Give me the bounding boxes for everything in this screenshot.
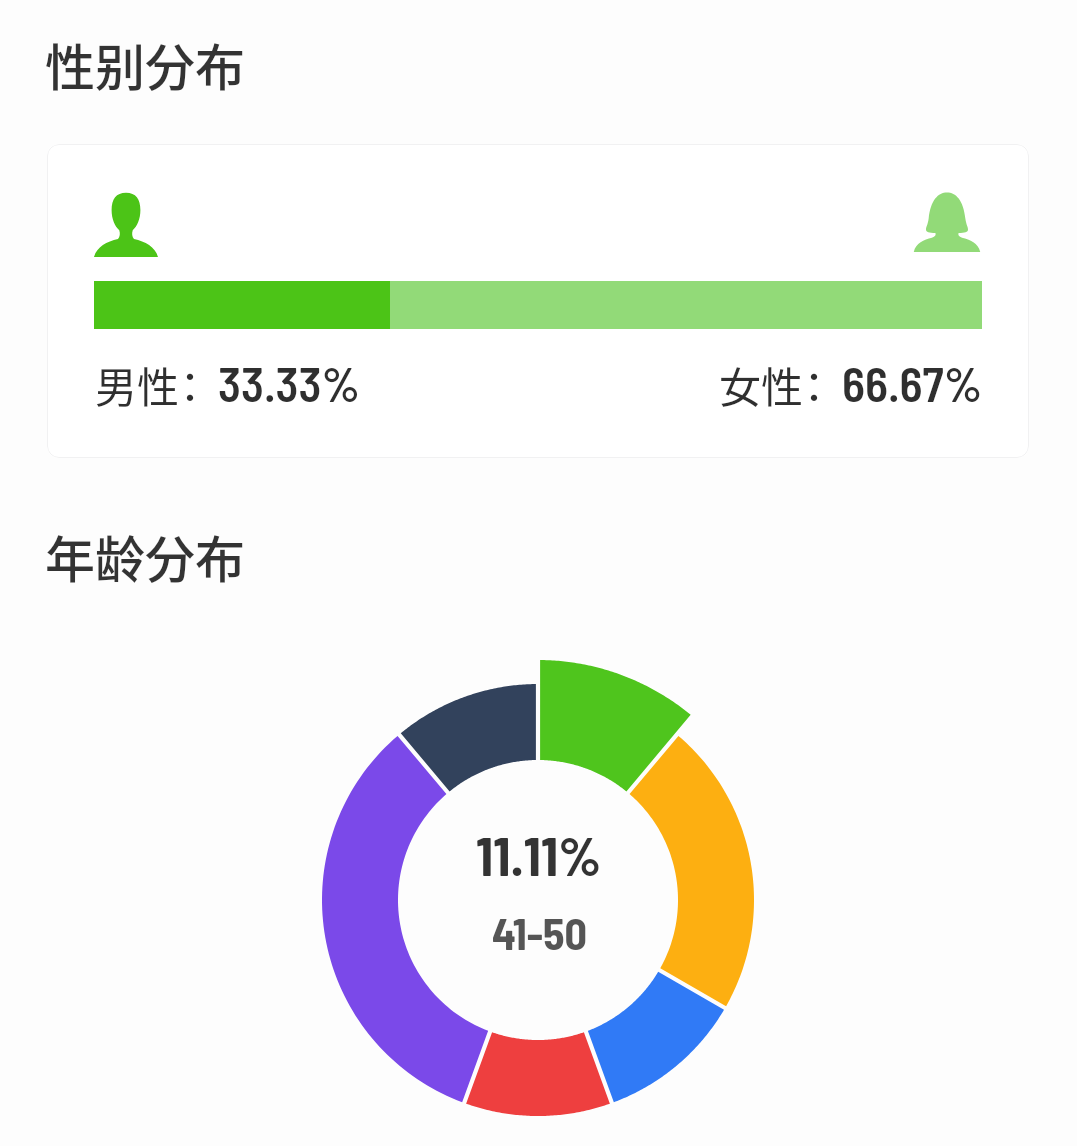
button[interactable]: 男性 (95, 354, 365, 415)
other: Male (94, 189, 158, 257)
staticText: 11.11% (476, 822, 602, 887)
staticText: 41-50 (492, 906, 587, 959)
staticText: 女性 (719, 354, 804, 415)
staticText: 性别分布 (45, 28, 245, 100)
staticText: 年龄分布 (45, 520, 245, 592)
button[interactable]: 女性 (714, 354, 983, 415)
staticText: 男性 (95, 354, 180, 415)
button[interactable]: Age distribution chart (298, 660, 778, 1140)
staticText: 33.33% (218, 354, 360, 412)
button[interactable]: Male (47, 144, 1029, 458)
staticText: 66.67% (842, 354, 983, 412)
staticText: ： (793, 354, 836, 415)
staticText: ： (169, 354, 212, 415)
other: Female (912, 189, 982, 252)
